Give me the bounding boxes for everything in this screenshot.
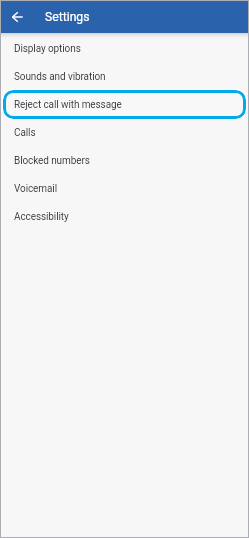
button[interactable]: Accessibility [1,203,248,231]
staticText: Blocked numbers [14,155,90,167]
button[interactable]: Calls [1,119,248,147]
button[interactable]: Blocked numbers [1,147,248,175]
button[interactable]: Sounds and vibration [1,63,248,91]
staticText: Reject call with message [14,99,122,111]
button[interactable]: Voicemail [1,175,248,203]
staticText: Accessibility [14,211,69,223]
button[interactable]: Reject call with message [1,91,248,119]
staticText: Settings [45,10,90,24]
button[interactable]: Display options [1,35,248,63]
button[interactable]: Navigate up [1,1,33,33]
staticText: Voicemail [14,183,57,195]
staticText: Calls [14,127,36,139]
staticText: Display options [14,43,81,55]
staticText: Sounds and vibration [14,71,106,83]
